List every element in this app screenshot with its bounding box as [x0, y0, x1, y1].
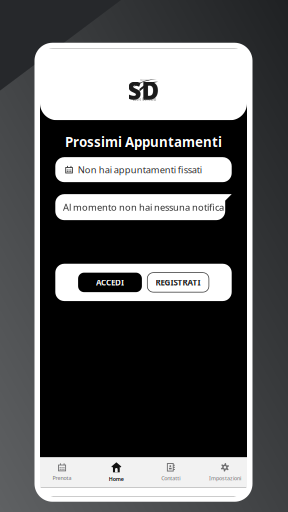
staticText: ACCEDI: [96, 277, 124, 288]
button[interactable]: Contatti: [143, 457, 198, 488]
staticText: SD: [127, 75, 159, 106]
staticText: Home: [109, 475, 124, 483]
staticText: STUDIO: [140, 78, 149, 82]
staticText: Al momento non hai nessuna notifica: [63, 201, 224, 213]
staticText: Prenota: [53, 474, 72, 482]
button[interactable]: Home: [89, 457, 143, 488]
staticText: Impostazioni: [209, 475, 241, 482]
staticText: Non hai appuntamenti fissati: [78, 163, 202, 176]
staticText: Studio Dentistico: [132, 98, 156, 101]
button[interactable]: REGISTRATI: [147, 273, 209, 292]
staticText: Contatti: [161, 475, 180, 482]
button[interactable]: Prenota: [35, 457, 89, 488]
button[interactable]: ACCEDI: [78, 273, 142, 292]
button[interactable]: Impostazioni: [198, 457, 252, 488]
staticText: Prossimi Appuntamenti: [65, 133, 222, 151]
staticText: REGISTRATI: [156, 277, 201, 288]
